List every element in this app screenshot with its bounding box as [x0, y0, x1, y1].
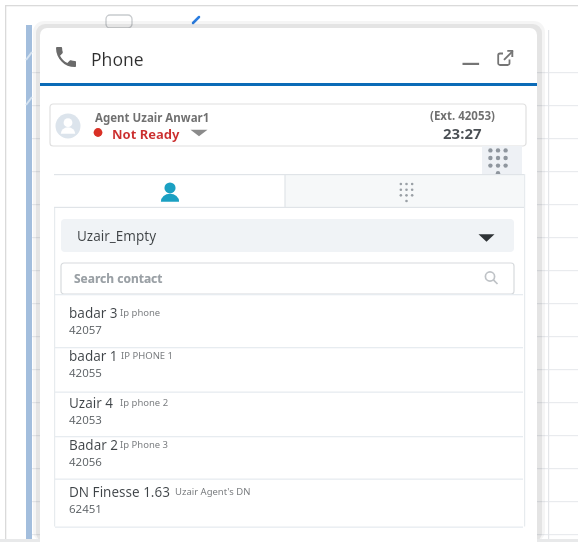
staticText: (Ext. 42053)	[430, 108, 495, 124]
button[interactable]: Search contact	[61, 263, 514, 294]
staticText: badar 1	[69, 347, 118, 365]
staticText: Agent Uzair Anwar1	[95, 110, 210, 126]
staticText: DN Finesse 1.63	[69, 483, 170, 501]
button[interactable]: badar 3	[55, 295, 523, 347]
staticText: 42053	[69, 412, 102, 428]
staticText: Ip phone	[120, 306, 161, 319]
button[interactable]: badar 1	[55, 348, 523, 392]
staticText: 62451	[69, 501, 102, 517]
button[interactable]: DN Finesse 1.63	[55, 480, 523, 527]
button[interactable]	[285, 174, 524, 208]
staticText: Ip Phone 3	[120, 438, 169, 451]
staticText: Search contact	[74, 270, 163, 286]
button[interactable]	[54, 174, 285, 208]
button[interactable]: Agent Uzair Anwar1	[50, 104, 526, 146]
staticText: IP PHONE 1	[121, 349, 174, 362]
staticText: 42055	[69, 365, 102, 381]
staticText: Uzair_Empty	[77, 227, 157, 245]
staticText: 23:27	[443, 123, 482, 143]
staticText: Uzair 4	[69, 394, 114, 412]
button[interactable]	[455, 78, 480, 98]
button[interactable]: Uzair 4	[55, 393, 523, 437]
button[interactable]	[490, 44, 516, 70]
staticText: Ip phone 2	[120, 396, 169, 409]
staticText: 42056	[69, 454, 102, 470]
staticText: Not Ready	[112, 125, 180, 143]
button[interactable]: Badar 2	[55, 437, 523, 479]
staticText: Uzair Agent's DN	[175, 485, 251, 498]
button[interactable]: Uzair_Empty	[61, 219, 514, 252]
button[interactable]	[482, 146, 522, 176]
staticText: Badar 2	[69, 436, 119, 454]
staticText: 42057	[69, 322, 102, 338]
staticText: Phone	[91, 47, 144, 71]
button[interactable]	[40, 28, 537, 83]
staticText: badar 3	[69, 304, 118, 322]
